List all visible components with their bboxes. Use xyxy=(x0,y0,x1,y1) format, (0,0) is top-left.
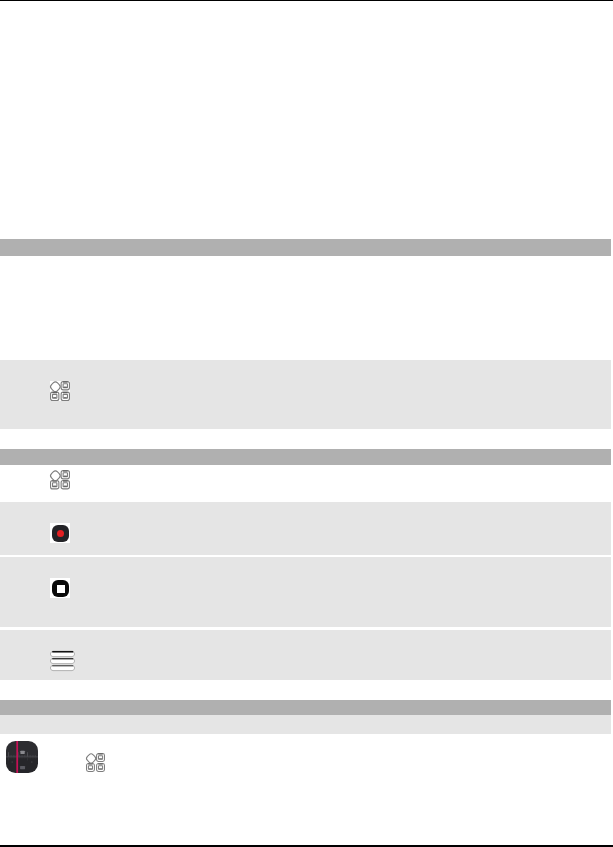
button[interactable]: Playlist xyxy=(0,630,611,680)
other: FM Radio xyxy=(6,741,38,773)
other: Playlist xyxy=(50,651,75,671)
button[interactable] xyxy=(0,360,611,429)
button[interactable] xyxy=(0,465,611,502)
button[interactable]: Record xyxy=(0,502,611,555)
other: Stop xyxy=(50,578,70,598)
other: Record xyxy=(50,523,70,543)
button[interactable]: FM Radio xyxy=(1,736,43,778)
button[interactable]: Open app xyxy=(76,743,115,782)
button[interactable]: Stop xyxy=(0,557,611,627)
